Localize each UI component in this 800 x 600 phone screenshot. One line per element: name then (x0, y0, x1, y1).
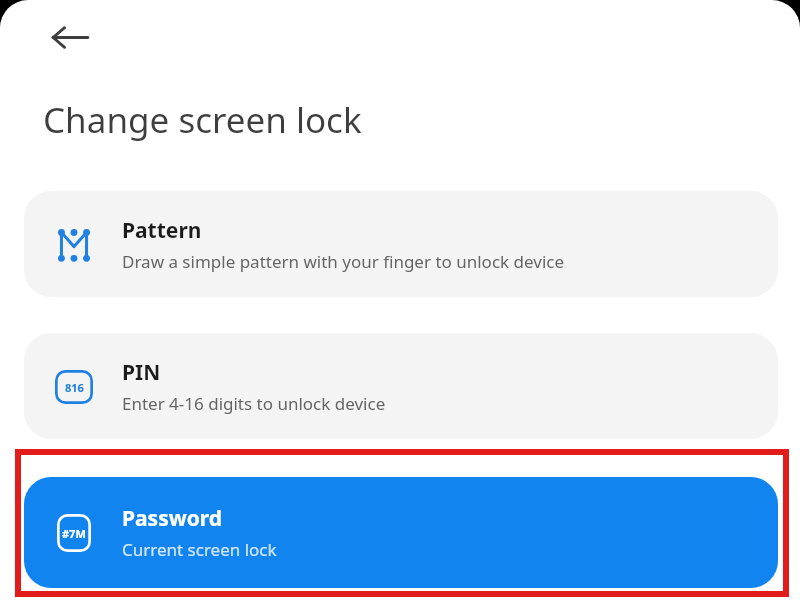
staticText: Password (122, 504, 223, 533)
button[interactable]: 816 (24, 333, 778, 439)
staticText: Current screen lock (122, 538, 277, 561)
button[interactable]: #7M (24, 477, 778, 588)
staticText: Draw a simple pattern with your finger t… (122, 250, 565, 273)
staticText: 816 (65, 380, 84, 395)
staticText: PIN (122, 358, 161, 387)
staticText: #7M (62, 526, 86, 541)
staticText: Enter 4-16 digits to unlock device (122, 392, 386, 415)
button[interactable]: Back (46, 13, 94, 61)
staticText: Change screen lock (43, 96, 362, 144)
staticText: Pattern (122, 216, 202, 245)
button[interactable]: Pattern (24, 191, 778, 297)
